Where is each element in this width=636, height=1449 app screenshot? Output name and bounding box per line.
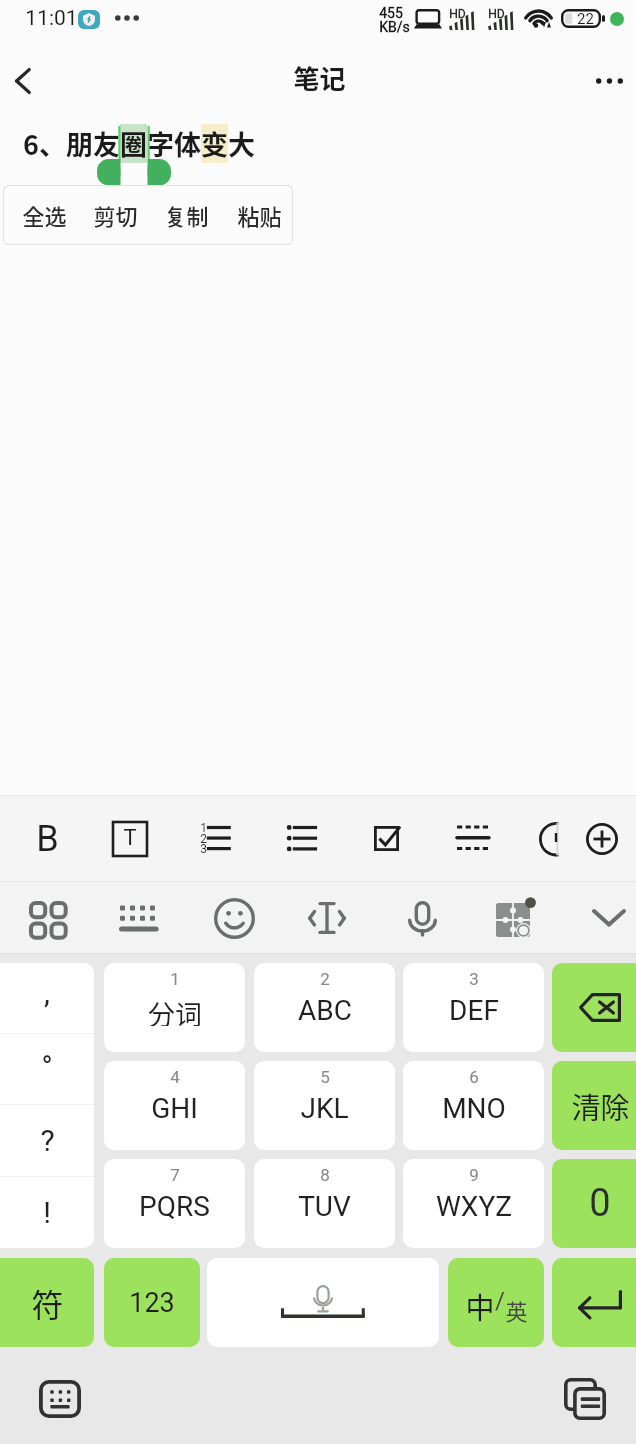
- staticText: GHI: [151, 1092, 198, 1124]
- button[interactable]: ,: [0, 963, 94, 1033]
- button[interactable]: 中: [448, 1258, 544, 1347]
- staticText: 3: [200, 842, 207, 855]
- staticText: 6: [469, 1067, 479, 1084]
- button[interactable]: Apps: [4, 882, 88, 954]
- button[interactable]: °: [0, 1034, 94, 1104]
- staticText: JKL: [300, 1092, 349, 1124]
- button[interactable]: Checklist: [345, 796, 429, 881]
- button[interactable]: More options: [582, 46, 636, 116]
- button[interactable]: Numbered list: [173, 796, 257, 881]
- staticText: DEF: [449, 994, 499, 1026]
- staticText: 455: [379, 5, 403, 21]
- staticText: !: [43, 1195, 51, 1230]
- button[interactable]: 3: [403, 963, 544, 1052]
- button[interactable]: 8: [254, 1159, 395, 1248]
- button[interactable]: ?: [0, 1105, 94, 1176]
- staticText: 1: [170, 969, 180, 986]
- button[interactable]: Hide keyboard: [567, 882, 636, 954]
- staticText: WXYZ: [436, 1190, 512, 1222]
- staticText: 圈: [120, 124, 147, 163]
- button[interactable]: 123: [104, 1258, 200, 1347]
- button[interactable]: Plugins: [474, 882, 558, 954]
- staticText: 2: [200, 832, 207, 845]
- staticText: 5: [320, 1067, 330, 1084]
- button[interactable]: Insert: [560, 796, 636, 881]
- staticText: 9: [469, 1165, 479, 1182]
- staticText: 变: [201, 124, 228, 163]
- staticText: 7: [170, 1165, 180, 1182]
- staticText: 中: [465, 1285, 495, 1327]
- staticText: /: [495, 1287, 505, 1315]
- staticText: 复制: [164, 199, 209, 231]
- button[interactable]: 1: [104, 963, 245, 1052]
- staticText: PQRS: [139, 1190, 210, 1222]
- staticText: HD: [488, 7, 505, 21]
- staticText: 符: [31, 1280, 64, 1326]
- button[interactable]: Space, hold for voice input: [207, 1258, 439, 1347]
- button[interactable]: Clipboard: [547, 1361, 623, 1437]
- staticText: 粘贴: [237, 199, 282, 231]
- staticText: TUV: [298, 1190, 351, 1222]
- staticText: 英: [505, 1294, 528, 1326]
- button[interactable]: Text style: [88, 796, 172, 881]
- staticText: 123: [129, 1287, 175, 1319]
- staticText: ABC: [298, 994, 352, 1026]
- button[interactable]: Enter: [552, 1258, 636, 1347]
- button[interactable]: !: [0, 1177, 94, 1248]
- button[interactable]: Emoji: [192, 882, 276, 954]
- button[interactable]: 4: [104, 1061, 245, 1150]
- button[interactable]: 剪切: [81, 185, 149, 245]
- staticText: 分词: [148, 994, 202, 1026]
- button[interactable]: Bold: [5, 796, 89, 881]
- staticText: 清除: [571, 1085, 630, 1127]
- staticText: HD: [449, 7, 466, 21]
- staticText: 全选: [22, 199, 67, 231]
- button[interactable]: Switch keyboard: [22, 1361, 98, 1437]
- staticText: KB/s: [379, 19, 410, 35]
- button[interactable]: Move cursor: [285, 882, 369, 954]
- staticText: 剪切: [93, 199, 138, 231]
- staticText: MNO: [442, 1092, 506, 1124]
- staticText: 1: [200, 821, 207, 834]
- button[interactable]: 5: [254, 1061, 395, 1150]
- staticText: °: [41, 1049, 53, 1084]
- staticText: 11:01: [25, 6, 78, 30]
- staticText: 22: [577, 10, 594, 28]
- button[interactable]: 全选: [10, 185, 78, 245]
- button[interactable]: 复制: [152, 185, 220, 245]
- staticText: 8: [320, 1165, 330, 1182]
- button[interactable]: 粘贴: [225, 185, 293, 245]
- button[interactable]: 6: [403, 1061, 544, 1150]
- staticText: 4: [170, 1067, 180, 1084]
- button[interactable]: 7: [104, 1159, 245, 1248]
- staticText: T: [123, 825, 137, 851]
- button[interactable]: Backspace: [552, 963, 636, 1052]
- staticText: 笔记: [293, 59, 346, 97]
- staticText: 字体: [147, 124, 201, 163]
- button[interactable]: Divider style: [431, 796, 515, 881]
- button[interactable]: Keyboard layout: [97, 882, 181, 954]
- button[interactable]: 符: [0, 1258, 94, 1347]
- staticText: B: [36, 818, 59, 860]
- staticText: ,: [44, 975, 50, 1010]
- staticText: 6、朋友: [23, 124, 120, 163]
- button[interactable]: Voice input: [380, 882, 464, 954]
- button[interactable]: Zero: [552, 1159, 636, 1248]
- button[interactable]: 2: [254, 963, 395, 1052]
- staticText: 3: [469, 969, 479, 986]
- button[interactable]: Highlight: [514, 796, 598, 881]
- staticText: 2: [320, 969, 330, 986]
- staticText: 大: [228, 124, 255, 163]
- button[interactable]: Clear: [552, 1061, 636, 1150]
- staticText: ?: [40, 1123, 55, 1158]
- button[interactable]: Bulleted list: [259, 796, 343, 881]
- button[interactable]: Back: [0, 46, 44, 116]
- button[interactable]: 9: [403, 1159, 544, 1248]
- staticText: 0: [589, 1181, 611, 1226]
